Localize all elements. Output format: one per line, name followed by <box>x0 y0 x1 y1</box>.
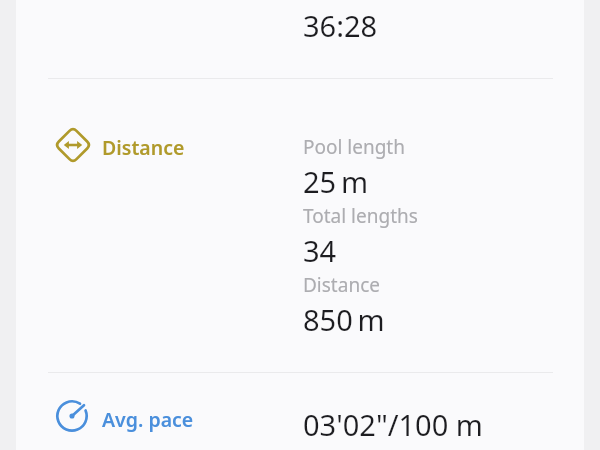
button[interactable]: Distance <box>16 79 584 372</box>
staticText: 850 m <box>303 300 385 339</box>
staticText: Pool length <box>303 134 405 160</box>
staticText: Total lengths <box>303 203 418 229</box>
staticText: Distance <box>303 272 380 298</box>
button[interactable]: 36:28 <box>16 0 584 78</box>
staticText: 36:28 <box>303 6 378 45</box>
staticText: Distance <box>102 134 185 161</box>
staticText: Avg. pace <box>102 406 194 433</box>
button[interactable]: Average pace <box>16 373 584 450</box>
staticText: 03'02"/100 m <box>303 405 483 444</box>
other: Distance <box>54 126 92 164</box>
staticText: 34 <box>303 231 337 270</box>
staticText: 25 m <box>303 162 369 201</box>
other: Average pace <box>56 400 88 432</box>
